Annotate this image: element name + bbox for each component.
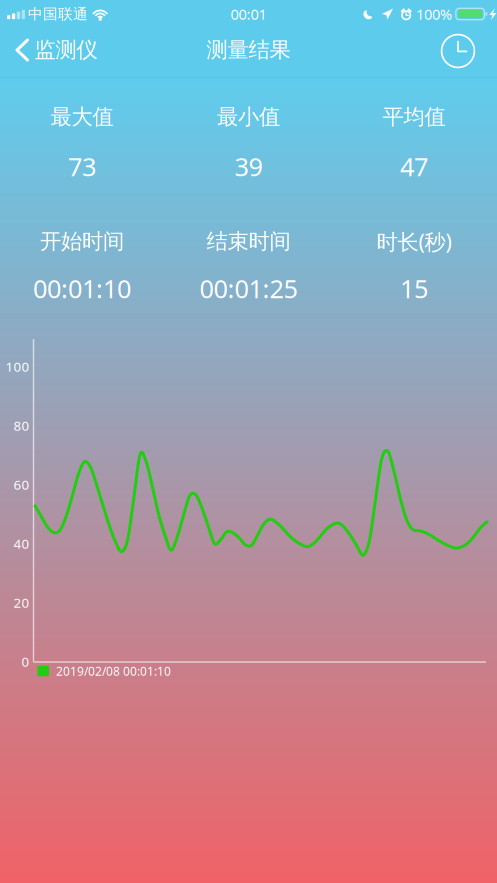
staticText: 00:01:10 — [33, 272, 131, 305]
staticText: 00:01 — [230, 4, 266, 24]
staticText: 0 — [21, 653, 29, 670]
staticText: 100 — [5, 358, 29, 375]
staticText: 监测仪 — [34, 37, 97, 63]
staticText: 开始时间 — [40, 228, 124, 255]
staticText: 20 — [13, 594, 29, 611]
staticText: 00:01:25 — [199, 272, 297, 305]
staticText: 73 — [68, 150, 96, 183]
staticText: 60 — [13, 476, 29, 493]
staticText: 100% — [416, 4, 452, 24]
staticText: 15 — [400, 272, 428, 305]
staticText: 测量结果 — [206, 37, 290, 63]
staticText: 80 — [13, 417, 29, 434]
staticText: 时长(秒) — [376, 227, 451, 256]
button[interactable]: 监测仪 — [0, 27, 109, 73]
staticText: 2019/02/08 00:01:10 — [56, 663, 171, 679]
staticText: 40 — [13, 535, 29, 552]
button[interactable]: History — [433, 26, 483, 76]
staticText: 结束时间 — [206, 228, 290, 255]
staticText: 平均值 — [382, 104, 445, 130]
staticText: 中国联通 — [28, 5, 88, 23]
staticText: 47 — [400, 150, 428, 183]
staticText: 39 — [234, 150, 262, 183]
staticText: 最小值 — [217, 104, 280, 130]
staticText: 最大值 — [50, 104, 113, 130]
